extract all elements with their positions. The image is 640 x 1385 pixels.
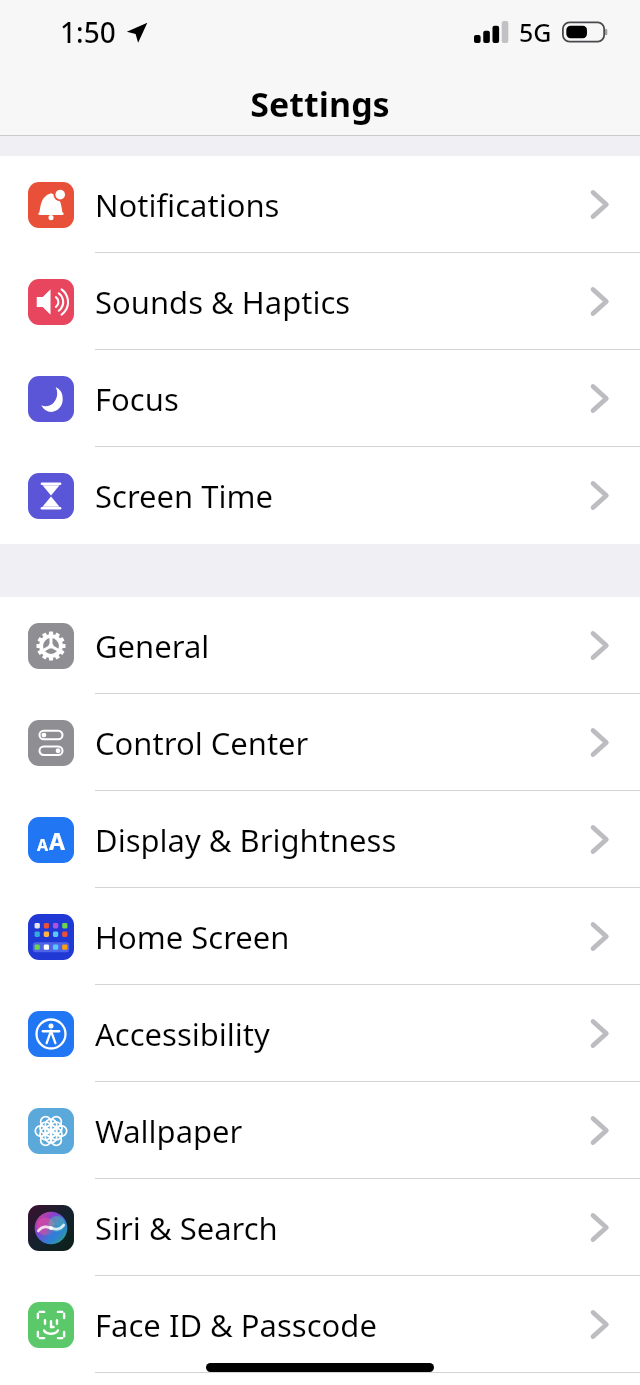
button[interactable]: Accessibility <box>0 985 640 1082</box>
button[interactable]: Home Screen <box>0 888 640 985</box>
staticText: A <box>37 834 49 856</box>
staticText: Home Screen <box>95 916 290 958</box>
button[interactable]: Notifications <box>0 156 640 253</box>
button[interactable]: Face ID & Passcode <box>0 1276 640 1373</box>
button[interactable]: Sounds & Haptics <box>0 253 640 350</box>
staticText: Settings <box>250 81 390 127</box>
staticText: Display & Brightness <box>95 819 397 861</box>
staticText: 1:50 <box>60 13 116 51</box>
staticText: Focus <box>95 378 179 420</box>
staticText: A <box>49 825 65 856</box>
staticText: Siri & Search <box>95 1207 278 1249</box>
staticText: Sounds & Haptics <box>95 281 351 323</box>
button[interactable]: Control Center <box>0 694 640 791</box>
staticText: Control Center <box>95 722 309 764</box>
staticText: Face ID & Passcode <box>95 1304 377 1346</box>
staticText: 5G <box>519 15 552 49</box>
button[interactable]: Focus <box>0 350 640 447</box>
staticText: Wallpaper <box>95 1110 243 1152</box>
button[interactable]: A <box>0 791 640 888</box>
staticText: Screen Time <box>95 475 273 517</box>
button[interactable]: General <box>0 597 640 694</box>
button[interactable]: Screen Time <box>0 447 640 544</box>
staticText: Accessibility <box>95 1013 270 1055</box>
button[interactable]: Wallpaper <box>0 1082 640 1179</box>
staticText: General <box>95 625 210 667</box>
staticText: Notifications <box>95 184 280 226</box>
button[interactable]: Siri & Search <box>0 1179 640 1276</box>
